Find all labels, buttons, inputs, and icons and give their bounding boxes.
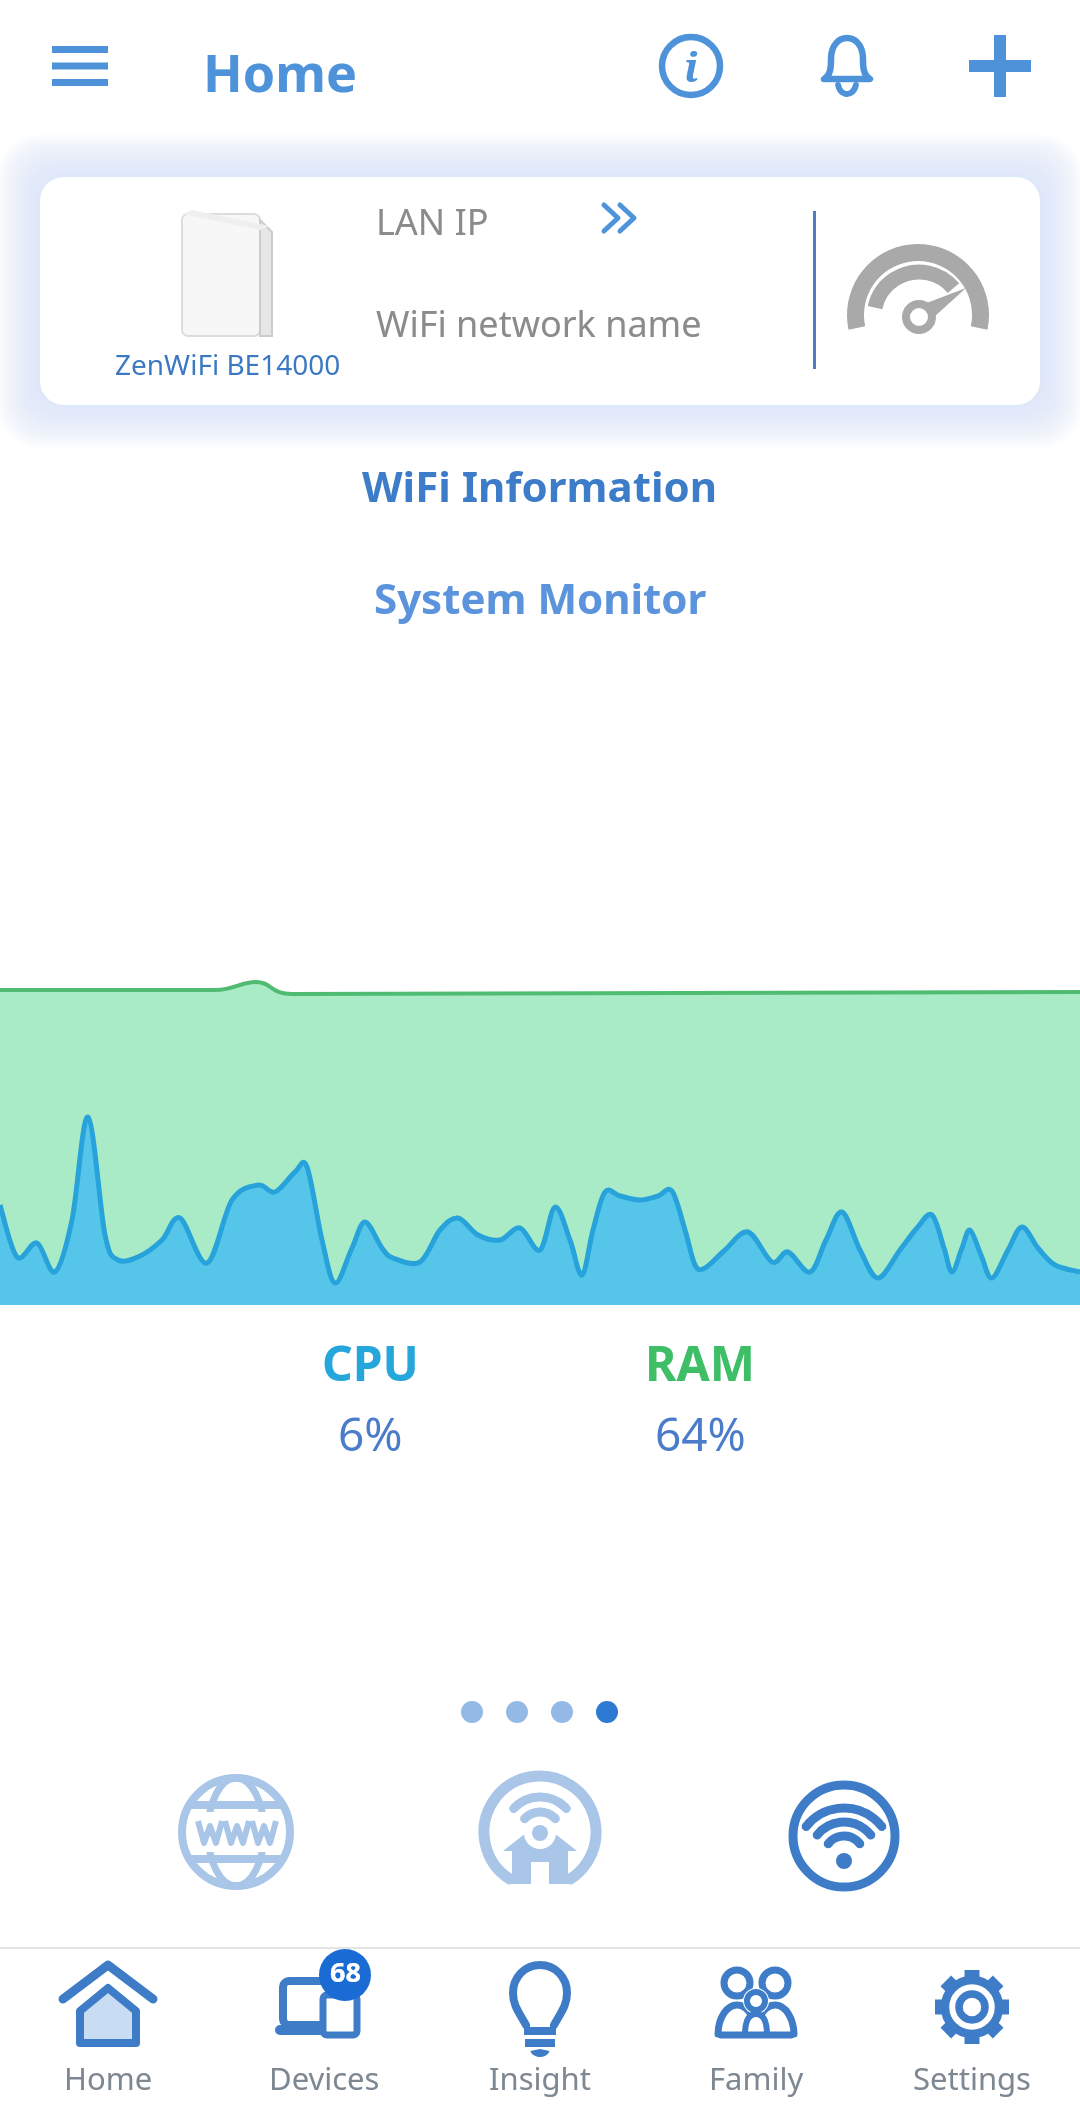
button[interactable]: Home [0, 1949, 216, 2113]
staticText: System Monitor [374, 569, 707, 626]
button[interactable] [478, 1770, 602, 1894]
button[interactable]: ZenWiFi BE14000 [40, 177, 1040, 405]
staticText: CPU [322, 1330, 419, 1395]
staticText: 64% [655, 1402, 746, 1465]
button[interactable]: WiFi Information [0, 455, 1080, 515]
button[interactable]: Settings [864, 1949, 1080, 2113]
staticText: 68 [330, 1953, 361, 1990]
staticText: Home [64, 2057, 153, 2099]
staticText: Insight [489, 2057, 591, 2099]
staticText: Home [203, 36, 358, 107]
staticText: i [684, 39, 699, 93]
staticText: 6% [338, 1402, 403, 1465]
staticText: ZenWiFi BE14000 [115, 345, 341, 383]
button[interactable] [810, 28, 884, 102]
staticText: WiFi network name [376, 299, 702, 348]
button[interactable] [178, 1774, 294, 1890]
staticText: RAM [645, 1330, 755, 1395]
button[interactable]: 68 [216, 1949, 432, 2113]
staticText: WiFi Information [362, 457, 718, 514]
staticText: LAN IP [376, 197, 489, 246]
button[interactable] [962, 28, 1038, 104]
button[interactable]: Family [648, 1949, 864, 2113]
button[interactable]: System Monitor [0, 567, 1080, 627]
button[interactable] [788, 1780, 900, 1892]
button[interactable] [44, 32, 116, 98]
staticText: Settings [913, 2057, 1031, 2099]
staticText: Family [709, 2057, 804, 2099]
button[interactable]: i [658, 33, 724, 99]
button[interactable]: Insight [432, 1949, 648, 2113]
staticText: Devices [269, 2057, 380, 2099]
